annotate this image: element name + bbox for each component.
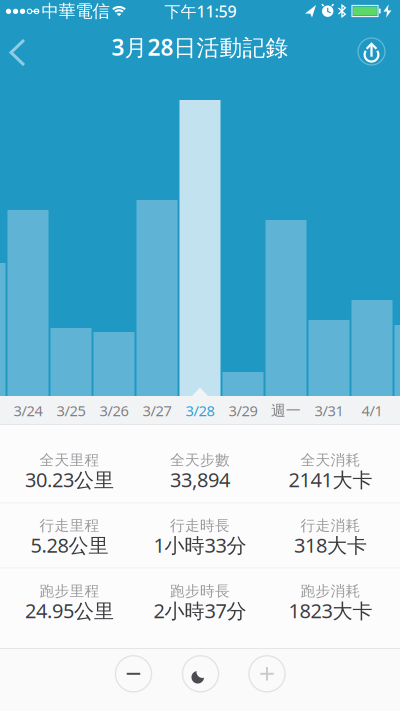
staticText: 3/28 [185, 401, 214, 420]
staticText: 1823大卡 [288, 597, 372, 624]
staticText: 跑步消耗 [300, 582, 360, 600]
staticText: 行走消耗 [300, 516, 360, 534]
staticText: 週一 [271, 401, 301, 419]
staticText: 中華電信 [41, 1, 109, 22]
staticText: 行走里程 [39, 516, 99, 534]
staticText: 3/27 [142, 401, 171, 420]
staticText: 3/24 [13, 401, 42, 420]
staticText: 2小時37分 [153, 597, 246, 624]
staticText: 3/29 [228, 401, 257, 420]
button[interactable]: Sleep [182, 655, 219, 692]
staticText: 3/31 [314, 401, 343, 420]
staticText: 5.28公里 [30, 532, 108, 558]
staticText: 2141大卡 [288, 466, 372, 493]
staticText: 全天步數 [170, 451, 230, 469]
button[interactable]: Back [3, 34, 31, 70]
button[interactable]: Increase [248, 655, 286, 692]
button[interactable]: Decrease [115, 655, 152, 692]
button[interactable]: Share [356, 36, 386, 66]
staticText: 跑步時長 [170, 582, 230, 600]
staticText: 下午11:59 [164, 1, 236, 22]
staticText: 行走時長 [170, 516, 230, 534]
staticText: 3/25 [56, 401, 85, 420]
staticText: 24.95公里 [25, 597, 114, 624]
staticText: 3/26 [99, 401, 128, 420]
staticText: 33,894 [170, 466, 230, 493]
staticText: 1小時33分 [153, 532, 246, 558]
staticText: 318大卡 [294, 532, 367, 558]
staticText: 跑步里程 [39, 582, 99, 600]
staticText: 全天里程 [39, 451, 99, 469]
staticText: 全天消耗 [300, 451, 360, 469]
staticText: 3月28日活動記錄 [111, 32, 288, 62]
staticText: 30.23公里 [25, 466, 114, 493]
staticText: 4/1 [361, 401, 382, 420]
